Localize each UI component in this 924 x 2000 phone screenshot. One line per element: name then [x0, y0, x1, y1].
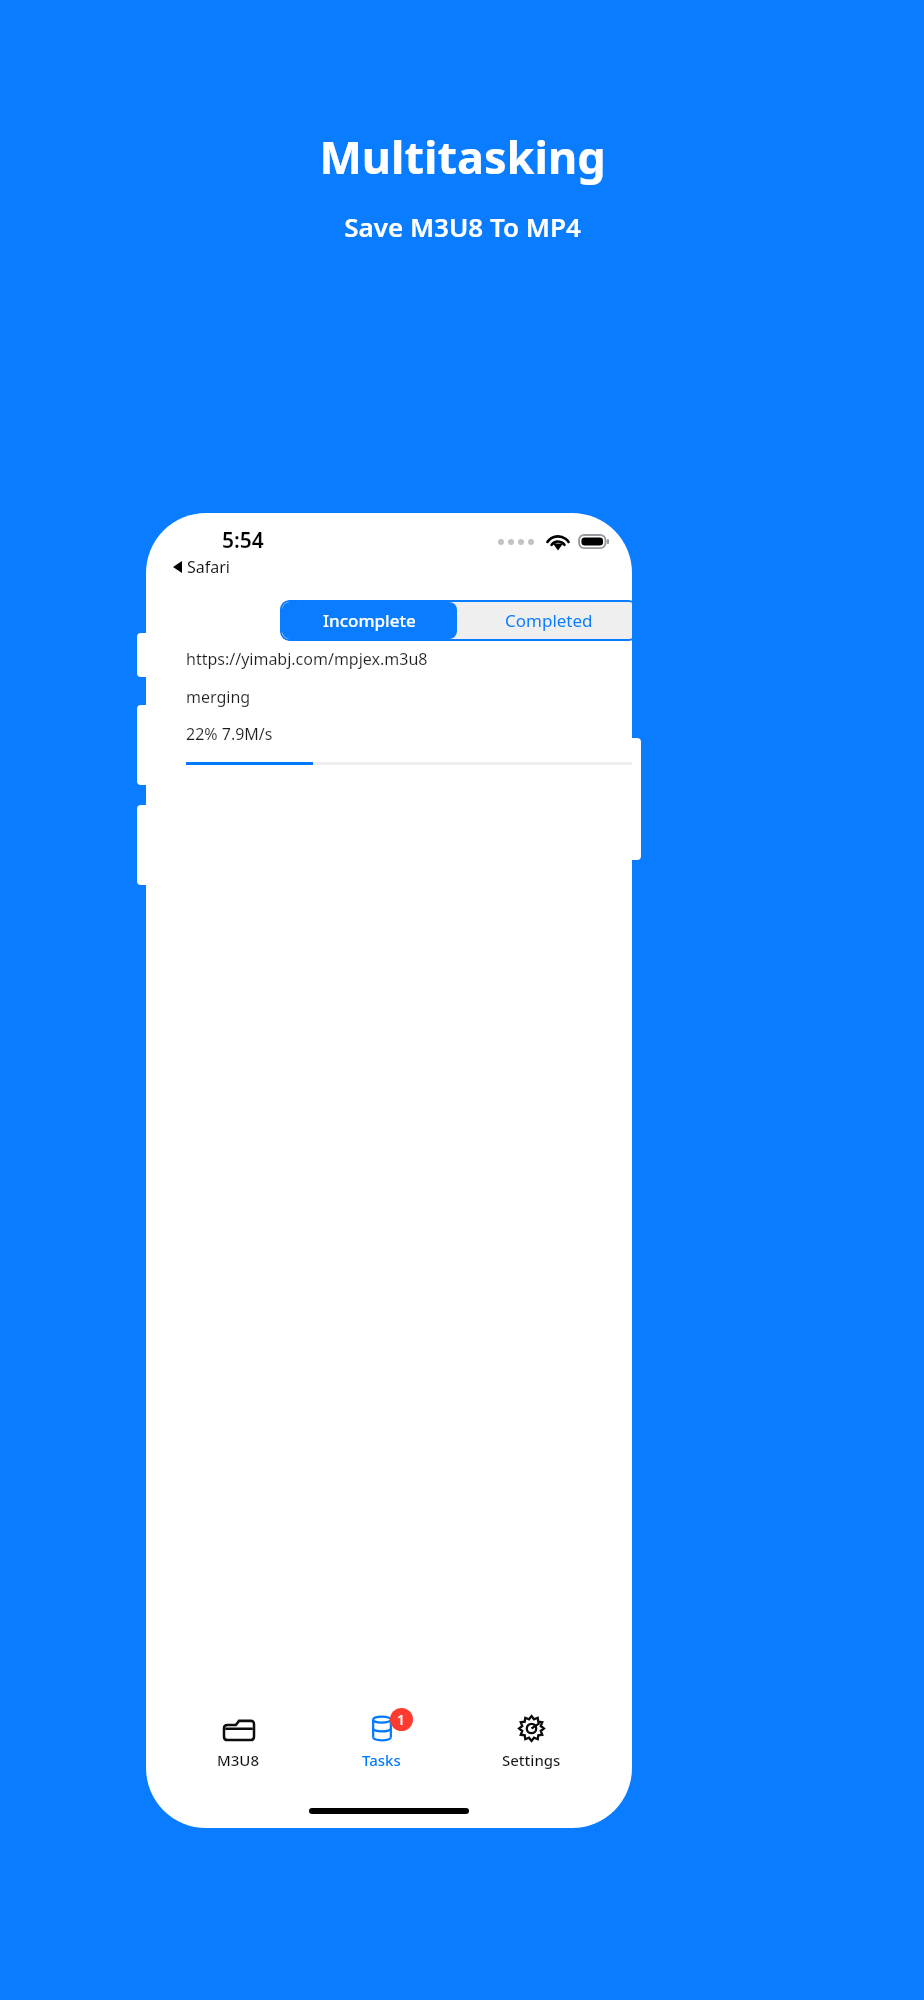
button[interactable]: M3U8 files: [187, 1716, 290, 1772]
button[interactable]: Settings: [472, 1713, 591, 1772]
staticText: 1: [397, 1710, 406, 1729]
staticText: 22% 7.9M/s: [186, 723, 273, 745]
staticText: merging: [186, 686, 251, 708]
staticText: https://yimabj.com/mpjex.m3u8: [186, 648, 428, 670]
staticText: Settings: [502, 1750, 561, 1770]
staticText: Tasks: [362, 1750, 401, 1770]
button[interactable]: Completed: [459, 600, 632, 641]
button[interactable]: https://yimabj.com/mpjex.m3u8: [146, 648, 632, 765]
button[interactable]: Tasks: [332, 1714, 431, 1772]
staticText: Save M3U8 To MP4: [344, 209, 581, 244]
staticText: 5:54: [222, 526, 264, 555]
staticText: Multitasking: [319, 126, 606, 187]
staticText: Completed: [505, 609, 593, 632]
staticText: M3U8: [217, 1750, 260, 1770]
button[interactable]: Incomplete: [282, 602, 457, 639]
staticText: Incomplete: [323, 609, 416, 632]
staticText: Safari: [187, 556, 230, 578]
